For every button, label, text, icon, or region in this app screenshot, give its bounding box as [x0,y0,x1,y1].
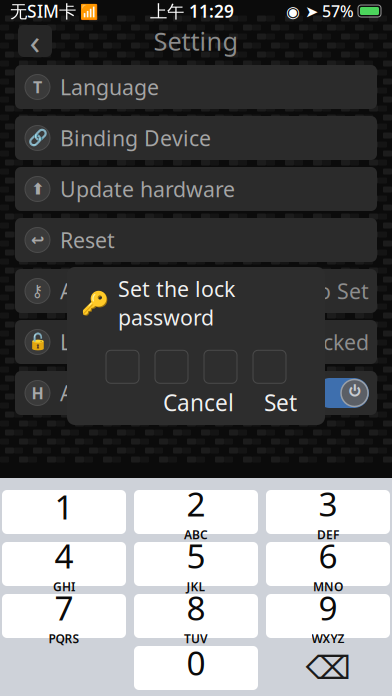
staticText: Setting [153,24,238,58]
staticText: 8 [186,585,205,630]
staticText: 1 [54,484,73,529]
button[interactable]: Cancel [157,383,240,421]
staticText: T [33,76,42,98]
button[interactable]: ↩ [15,218,377,262]
staticText: 🔑 [81,290,109,316]
staticText: No Set [302,277,369,305]
staticText: ↩ [31,231,44,249]
button[interactable]: 🔓 [15,320,377,364]
button[interactable]: 7 [2,594,126,638]
staticText: 上午 11:29 [150,0,234,22]
button[interactable]: 1 [2,490,126,534]
staticText: WXYZ [311,631,344,647]
staticText: ⬆ [31,180,44,198]
staticText: ⌫ [305,650,350,686]
staticText: 📶 [76,1,98,21]
button[interactable]: Delete [266,646,390,690]
staticText: ⚷ [31,282,43,300]
staticText: Set the lock password [118,275,235,331]
button[interactable]: 9 [266,594,390,638]
staticText: JKL [186,579,205,595]
button[interactable]: 2 [134,490,258,534]
staticText: Reset [60,226,115,254]
staticText: ABC [184,527,208,543]
staticText: Update hardware [60,175,235,203]
staticText: MNO [313,579,343,595]
staticText: 🔗 [27,129,47,147]
button[interactable]: 3 [266,490,390,534]
staticText: H [31,382,43,404]
button[interactable]: ⬆ [15,167,377,211]
button[interactable]: 🔗 [15,116,377,160]
button[interactable]: ⚷ [15,269,377,313]
staticText: 0 [186,640,205,685]
staticText: 2 [186,481,205,526]
staticText: PQRS [48,631,79,647]
staticText: Anti-lost [60,379,145,407]
staticText: 🔓 [27,333,47,351]
staticText: Auto lock [60,277,154,305]
staticText: DEF [317,527,339,543]
staticText: Set [264,387,297,417]
button[interactable]: T [15,65,377,109]
staticText: 3 [318,481,337,526]
staticText: 5 [186,533,205,578]
staticText: Unlocked [275,328,369,356]
button[interactable]: Set [258,383,303,421]
button[interactable]: 4 [2,542,126,586]
staticText: TUV [184,631,208,647]
staticText: 无SIM卡 [10,0,76,22]
staticText: Lock status [60,328,172,356]
staticText: 4 [54,533,73,578]
staticText: GHI [53,579,75,595]
staticText: Binding Device [60,124,211,152]
staticText: ⏻ [349,381,360,404]
staticText: 9 [318,585,337,630]
staticText: 6 [318,533,337,578]
button[interactable]: 6 [266,542,390,586]
button[interactable]: 5 [134,542,258,586]
staticText: Language [60,73,159,101]
button[interactable]: 0 [134,646,258,690]
button[interactable]: 8 [134,594,258,638]
staticText: ◉ ➤ 57% [286,0,354,22]
staticText: Cancel [163,387,234,417]
staticText: 7 [54,585,73,630]
staticText: ‹ [29,18,40,64]
button[interactable]: H [15,371,377,415]
button[interactable]: Back [18,25,52,57]
